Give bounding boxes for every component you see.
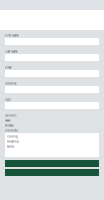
staticText: Last Name xyxy=(5,50,18,53)
staticText: First Name xyxy=(5,34,19,37)
staticText: Interests: xyxy=(5,129,18,132)
staticText: Female xyxy=(5,124,14,127)
staticText: Email xyxy=(5,66,12,69)
staticText: Gender: xyxy=(5,114,17,117)
staticText: Reading xyxy=(7,140,19,143)
staticText: Male xyxy=(5,119,11,122)
staticText: Music xyxy=(7,145,15,148)
staticText: Coding xyxy=(7,135,18,138)
staticText: Age xyxy=(5,98,11,101)
staticText: Address xyxy=(5,82,16,85)
